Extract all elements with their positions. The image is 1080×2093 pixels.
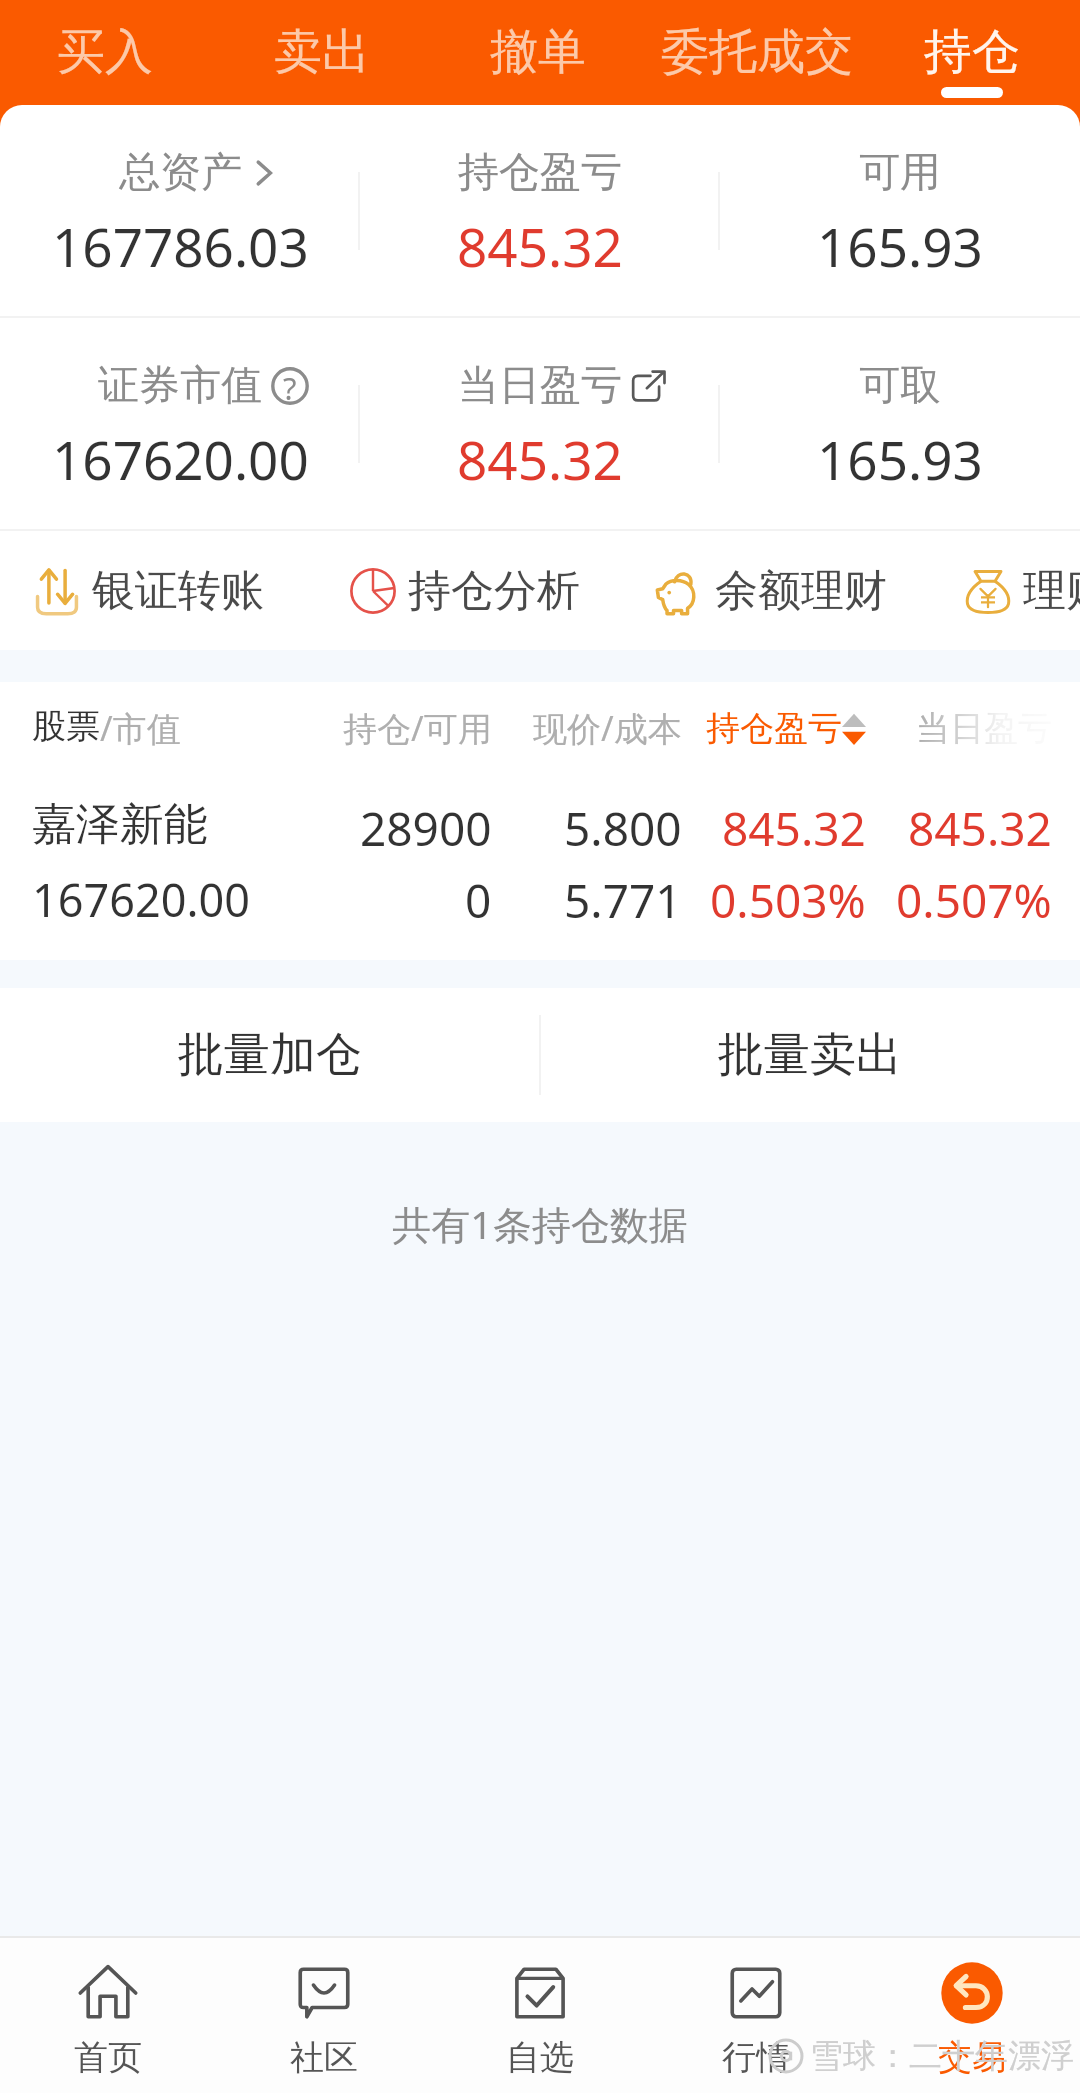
staticText: 845.32	[722, 797, 866, 860]
other: Quotes	[723, 1960, 789, 2026]
other: Community	[291, 1960, 357, 2026]
button[interactable]: Community	[216, 1938, 432, 2093]
staticText: 当日盈亏	[458, 360, 622, 412]
button[interactable]: 总资产	[0, 105, 360, 316]
staticText: 余额理财	[715, 564, 887, 618]
staticText: /市值	[100, 705, 181, 751]
staticText: 845.32	[457, 210, 623, 282]
staticText: 买入	[57, 22, 153, 82]
button[interactable]: 持仓盈亏	[706, 707, 866, 750]
staticText: 845.32	[457, 423, 623, 495]
staticText: 嘉泽新能	[32, 797, 208, 852]
button[interactable]: Home	[0, 1938, 216, 2093]
staticText: 可取	[859, 360, 941, 412]
staticText: 总资产	[119, 147, 242, 199]
other: Trade	[939, 1960, 1005, 2026]
button[interactable]: 理财	[961, 564, 1080, 618]
staticText: 交易	[938, 2036, 1006, 2079]
staticText: 0.503%	[710, 869, 866, 932]
button[interactable]: 持仓盈亏	[360, 105, 720, 316]
staticText: 批量加仓	[178, 1026, 362, 1084]
staticText: 撤单	[490, 22, 586, 82]
button[interactable]: 持仓	[897, 0, 1047, 105]
button[interactable]: 批量卖出	[540, 988, 1080, 1122]
staticText: 可用	[859, 147, 941, 199]
staticText: 5.771	[564, 869, 682, 932]
staticText: 理财	[1023, 564, 1080, 618]
staticText: 持仓分析	[408, 564, 580, 618]
staticText: 167620.00	[32, 869, 250, 930]
button[interactable]: 银证转账	[30, 564, 264, 618]
button[interactable]: 当日盈亏	[360, 318, 720, 529]
other: Home	[75, 1960, 141, 2026]
staticText: 委托成交	[661, 22, 853, 82]
button[interactable]: 批量加仓	[0, 988, 540, 1122]
staticText: 雪球：二十年漂浮	[810, 2035, 1074, 2077]
staticText: 0	[465, 869, 492, 932]
staticText: 0.507%	[896, 869, 1052, 932]
button[interactable]: 嘉泽新能	[0, 774, 1080, 960]
staticText: 共有1条持仓数据	[0, 1197, 1080, 1250]
other: Watchlist	[507, 1960, 573, 2026]
button[interactable]: 证券市值	[0, 318, 360, 529]
staticText: 卖出	[274, 22, 370, 82]
button[interactable]: 可用	[720, 105, 1080, 316]
staticText: 845.32	[908, 797, 1052, 860]
button[interactable]: Trade	[864, 1938, 1080, 2093]
staticText: 167620.00	[52, 423, 309, 495]
staticText: 批量卖出	[718, 1026, 902, 1084]
staticText: 现价/成本	[533, 705, 682, 751]
staticText: 165.93	[817, 210, 983, 282]
button[interactable]: 委托成交	[642, 0, 872, 105]
staticText: ?	[283, 367, 297, 405]
staticText: 持仓盈亏	[706, 707, 842, 750]
button[interactable]: Watchlist	[432, 1938, 648, 2093]
staticText: 当日盈亏	[916, 707, 1052, 750]
staticText: 165.93	[817, 423, 983, 495]
staticText: 社区	[290, 2036, 358, 2079]
button[interactable]: 可取	[720, 318, 1080, 529]
staticText: 行情	[722, 2036, 790, 2079]
staticText: 28900	[360, 797, 492, 860]
staticText: 持仓盈亏	[458, 147, 622, 199]
staticText: 证券市值	[98, 360, 262, 412]
staticText: 167786.03	[52, 210, 309, 282]
button[interactable]: 持仓分析	[346, 564, 580, 618]
button[interactable]: 余额理财	[653, 564, 887, 618]
staticText: 5.800	[564, 797, 682, 860]
staticText: 持仓	[924, 22, 1020, 82]
staticText: 持仓/可用	[343, 705, 492, 751]
button[interactable]: 买入	[30, 0, 180, 105]
button[interactable]: 卖出	[247, 0, 397, 105]
button[interactable]: Quotes	[648, 1938, 864, 2093]
button[interactable]: 撤单	[463, 0, 613, 105]
staticText: 股票	[32, 705, 100, 748]
staticText: 银证转账	[92, 564, 264, 618]
staticText: 首页	[74, 2036, 142, 2079]
staticText: 自选	[506, 2036, 574, 2079]
